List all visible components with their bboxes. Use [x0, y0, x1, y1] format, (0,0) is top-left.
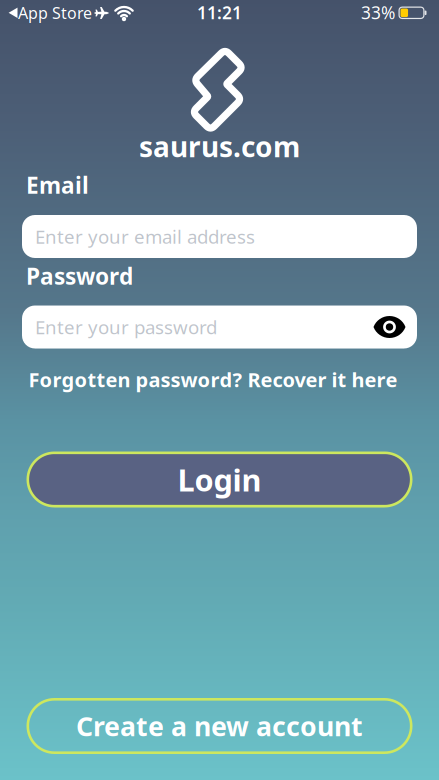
- staticText: Email: [26, 170, 89, 200]
- staticText: 33%: [361, 1, 395, 24]
- staticText: Enter your email address: [35, 224, 255, 249]
- button[interactable]: Enter your email address: [22, 215, 417, 258]
- staticText: saurus.com: [139, 128, 300, 165]
- staticText: Enter your password: [35, 315, 217, 339]
- button[interactable]: Login: [26, 451, 412, 507]
- staticText: Password: [26, 261, 133, 291]
- button[interactable]: Forgotten password? Recover it here: [28, 366, 397, 393]
- button[interactable]: Enter your password: [22, 305, 417, 348]
- staticText: 11:21: [197, 1, 242, 24]
- button[interactable]: Create a new account: [26, 698, 412, 754]
- button[interactable]: Show password: [371, 312, 407, 342]
- staticText: Create a new account: [76, 708, 363, 744]
- staticText: App Store: [18, 2, 92, 23]
- staticText: Login: [177, 459, 261, 500]
- staticText: Forgotten password? Recover it here: [28, 366, 397, 393]
